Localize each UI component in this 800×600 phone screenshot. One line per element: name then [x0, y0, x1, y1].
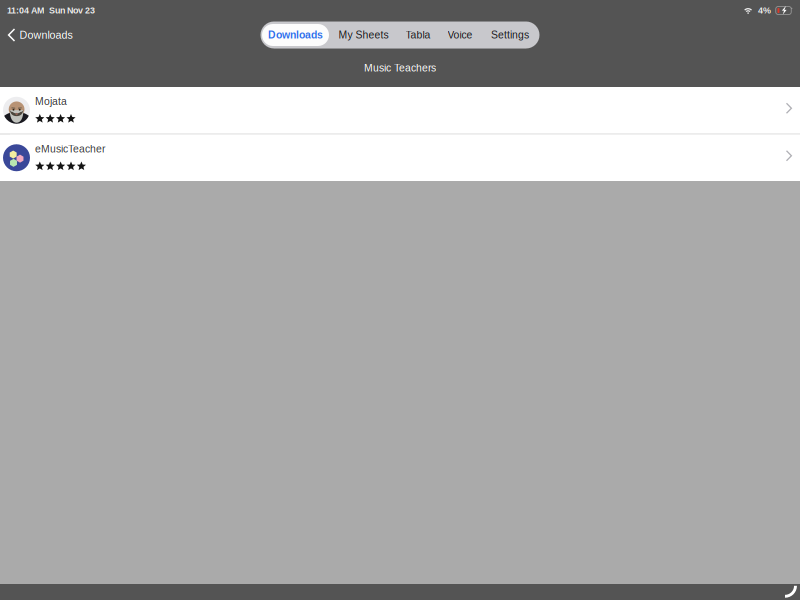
- staticText: Downloads: [268, 29, 323, 41]
- staticText: Mojata: [35, 96, 67, 107]
- staticText: Tabla: [405, 29, 430, 41]
- staticText: My Sheets: [338, 29, 388, 41]
- staticText: eMusicTeacher: [35, 143, 105, 155]
- staticText: Settings: [491, 29, 529, 41]
- button[interactable]: eMusicTeacher: [0, 134, 800, 181]
- button[interactable]: Tabla: [396, 21, 439, 48]
- button[interactable]: Mojata: [0, 87, 800, 133]
- button[interactable]: Settings: [480, 21, 539, 48]
- button[interactable]: Voice: [439, 21, 480, 48]
- staticText: 4%: [758, 5, 771, 15]
- button[interactable]: Back to Downloads: [0, 20, 80, 50]
- staticText: Music Teachers: [364, 62, 436, 74]
- staticText: Voice: [447, 29, 472, 41]
- staticText: 11:04 AM: [7, 5, 44, 15]
- button[interactable]: Downloads: [260, 21, 330, 48]
- staticText: Sun Nov 23: [49, 5, 95, 15]
- staticText: Downloads: [19, 29, 72, 41]
- button[interactable]: My Sheets: [330, 21, 396, 48]
